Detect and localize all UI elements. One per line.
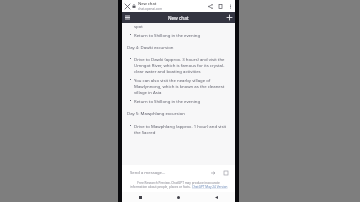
button[interactable]: Share [205,1,215,11]
button[interactable]: Close [122,1,132,11]
staticText: Drive to Dawki (approx. 3 hours) and vis… [134,56,228,74]
staticText: Return to Shillong in the evening [134,98,201,104]
button[interactable]: Download [215,1,225,11]
staticText: You can also visit the nearby village of… [134,77,228,95]
button[interactable]: Stop generating [222,169,230,177]
staticText: New chat [168,15,189,21]
button[interactable]: Recent apps [122,192,159,202]
staticText: Return to Shillong in the evening [134,32,201,38]
staticText: Send a message... [130,170,166,176]
button[interactable]: Menu [122,12,133,23]
staticText: spot [134,23,143,29]
button[interactable]: Send a message... [127,168,218,178]
staticText: New chat [138,1,157,7]
staticText: information about people, places or fact… [130,185,192,189]
button[interactable]: ChatGPT May 24 Version [192,185,228,189]
staticText: Day 4: Dawki excursion [127,44,174,50]
button[interactable]: New chat [132,0,205,12]
button[interactable]: More options [225,1,235,11]
staticText: Day 5: Mawphlang excursion [127,110,185,116]
button[interactable]: New chat [224,12,235,23]
staticText: Free Research Preview. ChatGPT may produ… [127,181,230,185]
staticText: chat.openai.com [138,7,163,11]
button[interactable]: Home [159,192,197,202]
staticText: Drive to Mawphlang (approx. 1 hour) and … [134,123,228,135]
button[interactable]: Back [197,192,235,202]
